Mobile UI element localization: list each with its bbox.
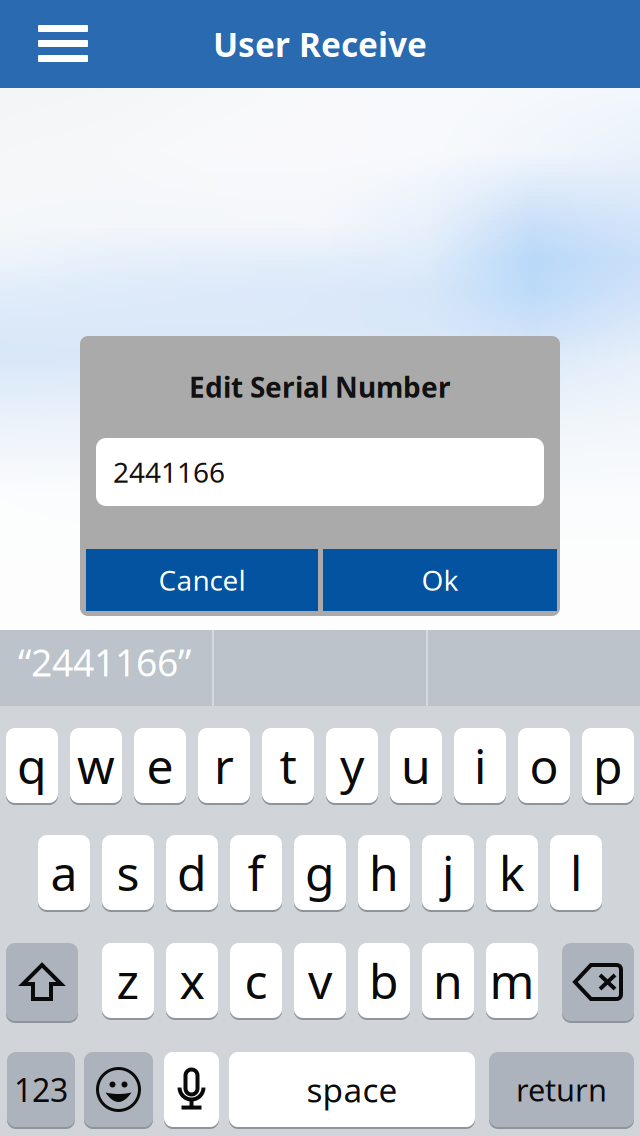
button[interactable]: z [102,943,154,1018]
staticText: x [179,949,204,1012]
button[interactable]: o [518,728,570,803]
button[interactable]: i [454,728,506,803]
staticText: c [244,949,267,1012]
staticText: Ok [421,561,458,599]
staticText: u [401,734,431,797]
staticText: f [247,841,264,904]
button[interactable]: Ok [323,549,557,611]
staticText: s [116,841,139,904]
button[interactable]: t [262,728,314,803]
button[interactable]: k [486,835,538,910]
staticText: d [177,841,207,904]
button[interactable]: l [550,835,602,910]
button[interactable]: 123 [7,1052,75,1127]
button[interactable]: Dictate [164,1052,219,1127]
button[interactable]: j [422,835,474,910]
staticText: Edit Serial Number [189,368,451,406]
button[interactable]: “2441166” [0,630,212,706]
staticText: w [77,734,115,797]
staticText: k [499,841,525,904]
staticText: 123 [14,1068,68,1111]
button[interactable]: Cancel [86,549,318,611]
button[interactable]: c [230,943,282,1018]
staticText: r [214,734,234,797]
staticText: g [305,841,335,904]
button[interactable]: Emoji [84,1052,153,1127]
button[interactable]: n [422,943,474,1018]
staticText: a [50,841,77,904]
button[interactable]: e [134,728,186,803]
staticText: j [442,841,454,904]
button[interactable]: f [230,835,282,910]
button[interactable]: h [358,835,410,910]
button[interactable]: d [166,835,218,910]
button[interactable]: u [390,728,442,803]
staticText: h [369,841,399,904]
staticText: return [516,1069,607,1110]
staticText: space [306,1067,397,1112]
staticText: v [308,949,332,1012]
button[interactable]: m [486,943,538,1018]
staticText: User Receive [213,22,427,66]
button[interactable]: x [166,943,218,1018]
staticText: “2441166” [18,637,191,687]
button[interactable]: Shift [6,943,78,1021]
staticText: m [489,949,534,1012]
staticText: Cancel [158,561,245,599]
staticText: q [17,734,47,797]
staticText: b [369,949,399,1012]
button[interactable]: b [358,943,410,1018]
button[interactable]: Delete [562,943,634,1021]
button[interactable]: a [38,835,90,910]
button[interactable]: s [102,835,154,910]
button[interactable]: Menu [0,0,126,88]
button[interactable]: r [198,728,250,803]
button[interactable]: q [6,728,58,803]
button[interactable]: space [229,1052,475,1127]
button[interactable]: y [326,728,378,803]
staticText: t [279,734,296,797]
staticText: y [340,734,364,797]
button[interactable]: g [294,835,346,910]
staticText: l [570,841,582,904]
button[interactable]: p [582,728,634,803]
button[interactable]: w [70,728,122,803]
button[interactable]: return [489,1052,634,1127]
button[interactable]: v [294,943,346,1018]
staticText: i [474,734,486,797]
staticText: 2441166 [113,453,225,491]
staticText: o [529,734,558,797]
staticText: e [146,734,173,797]
staticText: p [593,734,623,797]
staticText: z [116,949,139,1012]
staticText: n [433,949,463,1012]
